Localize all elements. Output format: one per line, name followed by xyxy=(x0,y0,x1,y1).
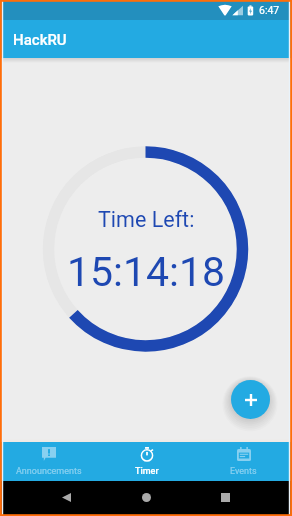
button[interactable]: Timer xyxy=(98,442,195,481)
staticText: 15:14:18 xyxy=(67,248,226,296)
staticText: Announcements xyxy=(16,466,82,477)
staticText: Timer xyxy=(135,466,159,477)
staticText: 6:47 xyxy=(259,4,280,16)
staticText: Time Left: xyxy=(98,207,195,232)
button[interactable]: Events xyxy=(195,442,292,481)
other: Home xyxy=(142,493,151,502)
staticText: HackRU xyxy=(13,31,67,49)
button[interactable]: Announcements xyxy=(0,442,98,481)
staticText: Events xyxy=(230,466,257,477)
button[interactable]: Add xyxy=(231,380,270,419)
other: Back xyxy=(62,493,71,502)
